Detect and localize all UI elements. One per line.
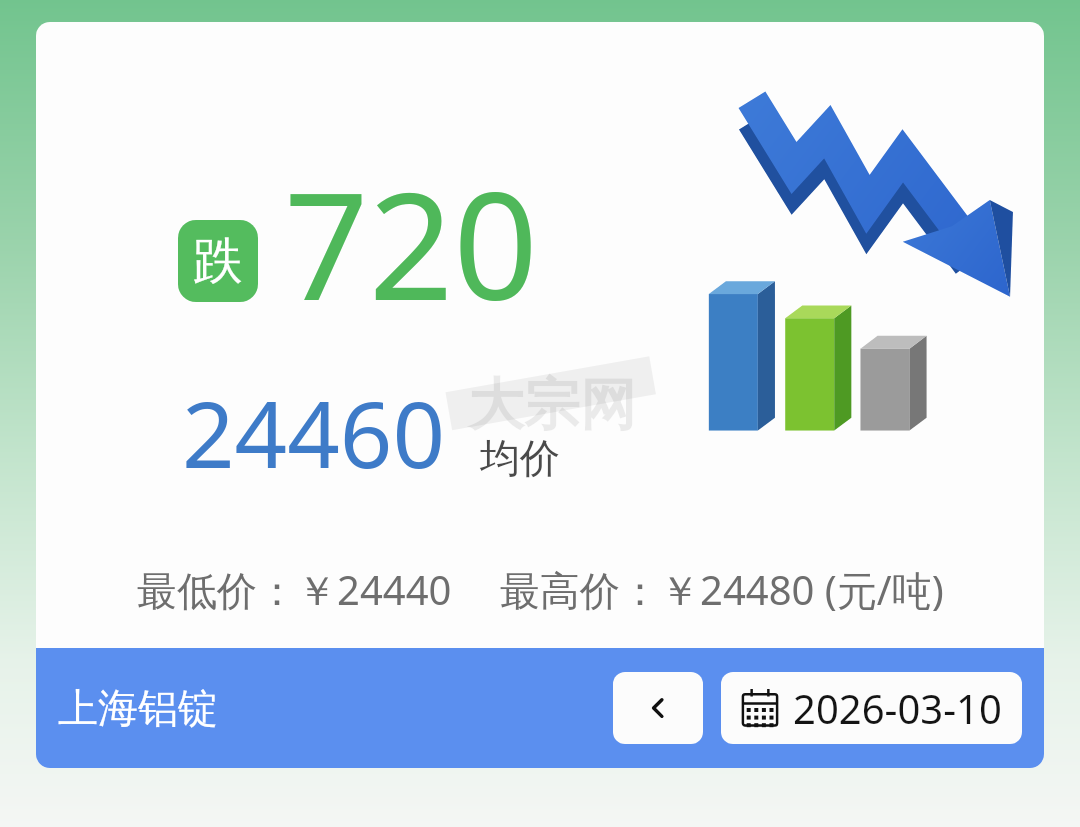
staticText: 跌 <box>193 230 243 293</box>
staticText: 2026-03-10 <box>793 681 1002 735</box>
staticText: 均价 <box>480 433 560 483</box>
staticText: 上海铝锭 <box>58 683 218 733</box>
staticText: 720 <box>284 142 538 344</box>
button[interactable]: Previous day <box>613 672 703 744</box>
staticText: 24460 <box>182 370 446 495</box>
button[interactable]: 2026-03-10 <box>721 672 1022 744</box>
staticText: 最低价：￥24440 <box>137 562 452 617</box>
staticText: 大宗网 <box>468 370 636 441</box>
staticText: 最高价：￥24480 (元/吨) <box>500 562 944 617</box>
